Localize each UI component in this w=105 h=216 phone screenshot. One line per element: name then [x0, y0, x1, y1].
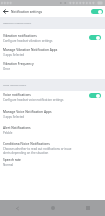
- staticText: Configure headset vibration settings: [3, 39, 53, 43]
- staticText: VOICE NOTIFICATIONS: [3, 84, 27, 87]
- staticText: Alert Notifications: [3, 126, 31, 130]
- button[interactable]: Back: [1, 7, 10, 16]
- staticText: Conditional Voice Notifications: [3, 142, 50, 146]
- button[interactable]: Toggle: [89, 35, 101, 40]
- button[interactable]: Recents: [70, 200, 105, 216]
- button[interactable]: Toggle: [91, 9, 103, 14]
- staticText: Manage Voice Notification Apps: [3, 110, 52, 114]
- staticText: Once: [3, 67, 11, 71]
- button[interactable]: Vibration Frequency: [0, 59, 105, 73]
- staticText: 3 apps Selected: [3, 115, 25, 119]
- staticText: Voice notifications: [3, 93, 31, 97]
- button[interactable]: Alert Notifications: [0, 124, 105, 140]
- button[interactable]: Toggle: [89, 93, 101, 98]
- staticText: 3 apps Selected: [3, 53, 25, 57]
- staticText: Notification settings: [11, 10, 42, 14]
- staticText: Vibration Frequency: [3, 62, 34, 66]
- staticText: Configure headset voice notification set…: [3, 98, 64, 102]
- staticText: Speech rate: [3, 158, 21, 162]
- staticText: VIBRATION NOTIFICATIONS: [3, 22, 32, 25]
- button[interactable]: Vibration notifications: [0, 29, 105, 45]
- button[interactable]: Manage Voice Notification Apps: [0, 108, 105, 124]
- staticText: Normal: [3, 163, 14, 167]
- staticText: Pebble: [3, 131, 13, 135]
- button[interactable]: Voice notifications: [0, 91, 105, 108]
- button[interactable]: Manage Vibration Notification Apps: [0, 45, 105, 59]
- staticText: Manage Vibration Notification Apps: [3, 48, 58, 52]
- button[interactable]: Conditional Voice Notifications: [0, 140, 105, 156]
- staticText: Vibration notifications: [3, 34, 37, 38]
- staticText: Chooses whether to read out notification…: [3, 147, 76, 154]
- button[interactable]: Speech rate: [0, 156, 105, 170]
